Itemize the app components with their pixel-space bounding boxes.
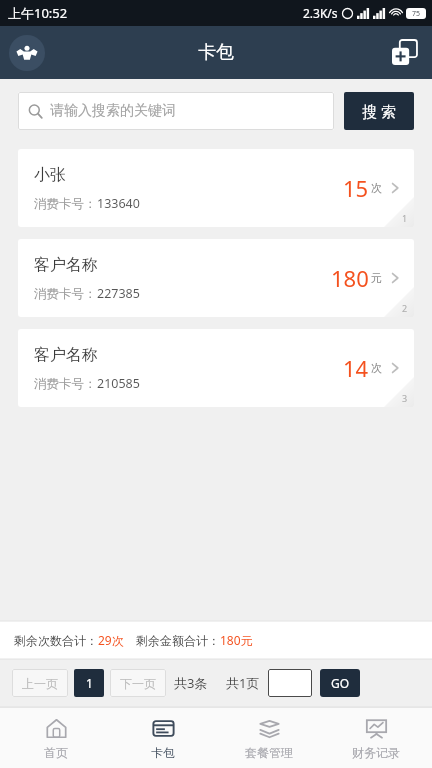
staticText: 180 — [331, 263, 369, 293]
staticText: 请输入搜索的关键词 — [50, 102, 176, 120]
staticText: 15 — [343, 173, 369, 203]
staticText: 消费卡号： — [34, 376, 97, 392]
staticText: 卡包 — [198, 41, 234, 64]
staticText: 消费卡号： — [34, 286, 97, 302]
staticText: 下一页 — [120, 676, 156, 691]
staticText: GO — [331, 675, 350, 691]
button[interactable]: 1 — [74, 669, 104, 697]
staticText: 1 — [402, 212, 408, 224]
staticText: 客户名称 — [34, 255, 98, 275]
staticText: 3 — [402, 392, 408, 404]
staticText: 剩余次数合计： — [14, 633, 98, 648]
button[interactable]: Profile — [9, 35, 45, 71]
button[interactable]: 卡包 — [113, 717, 213, 760]
staticText: 小张 — [34, 165, 66, 185]
staticText: 29次 — [98, 632, 124, 648]
staticText: 卡包 — [151, 745, 175, 760]
button[interactable]: 搜 索 — [344, 92, 414, 130]
staticText: 元 — [371, 271, 382, 285]
staticText: 搜 索 — [362, 101, 396, 121]
staticText: 133640 — [97, 195, 140, 212]
button[interactable]: 小张 — [18, 149, 414, 227]
staticText: 剩余金额合计： — [136, 633, 220, 648]
staticText: 上一页 — [22, 676, 58, 691]
staticText: 2 — [402, 302, 408, 314]
staticText: 180元 — [220, 632, 253, 648]
staticText: 客户名称 — [34, 345, 98, 365]
button[interactable]: 财务记录 — [326, 717, 426, 760]
staticText: 1 — [86, 675, 93, 691]
staticText: 共3条 — [174, 674, 208, 692]
button[interactable]: 首页 — [6, 717, 106, 760]
button[interactable]: 套餐管理 — [219, 717, 319, 760]
staticText: 套餐管理 — [245, 745, 293, 760]
button[interactable]: 请输入搜索的关键词 — [18, 92, 334, 130]
staticText: 财务记录 — [352, 745, 400, 760]
staticText: 消费卡号： — [34, 196, 97, 212]
button[interactable]: 客户名称 — [18, 239, 414, 317]
button[interactable]: GO — [320, 669, 360, 697]
button[interactable] — [268, 669, 312, 697]
staticText: 共1页 — [226, 674, 260, 692]
staticText: 210585 — [97, 375, 140, 392]
staticText: 次 — [371, 181, 382, 195]
staticText: 次 — [371, 361, 382, 375]
staticText: 227385 — [97, 285, 140, 302]
staticText: 14 — [343, 353, 369, 383]
button[interactable]: 上一页 — [12, 669, 68, 697]
staticText: 首页 — [44, 745, 68, 760]
button[interactable]: 客户名称 — [18, 329, 414, 407]
staticText: 上午10:52 — [8, 4, 68, 22]
staticText: 75 — [412, 9, 421, 19]
button[interactable]: Add card — [388, 36, 422, 70]
staticText: 2.3K/s — [303, 5, 338, 21]
button[interactable]: 下一页 — [110, 669, 166, 697]
